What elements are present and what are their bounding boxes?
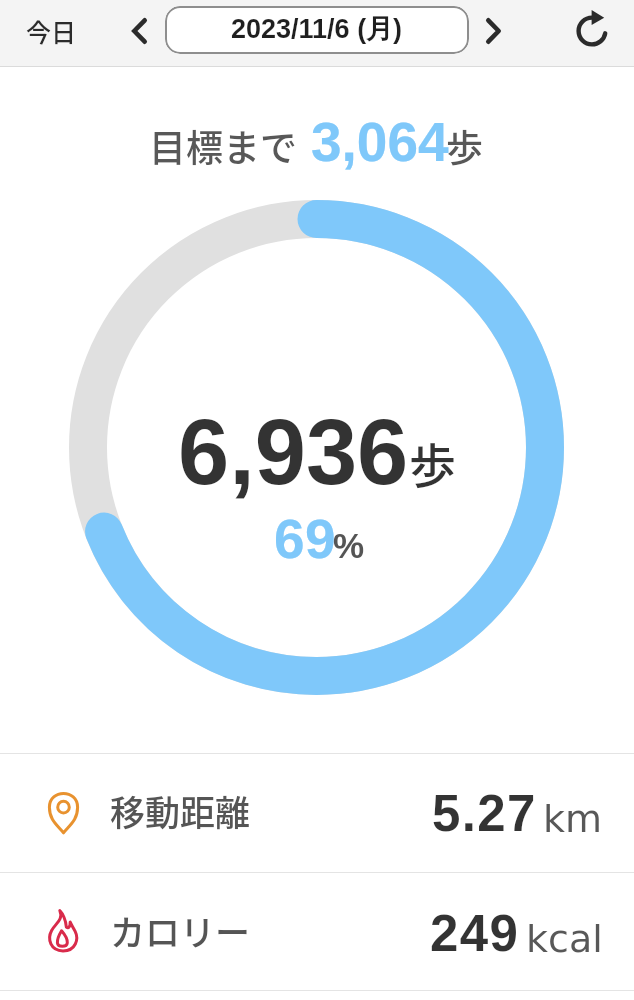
button[interactable]: 移動距離 <box>0 754 634 872</box>
staticText: 移動距離 <box>110 785 251 836</box>
staticText: 2023/11/6 (月) <box>231 12 403 46</box>
staticText: % <box>333 526 365 565</box>
staticText: 249 <box>430 905 520 962</box>
staticText: 5.27 <box>432 785 537 842</box>
button[interactable]: Previous day <box>117 0 162 62</box>
button[interactable]: Refresh <box>562 0 622 62</box>
staticText: 今日 <box>26 13 77 49</box>
staticText: km <box>543 797 603 841</box>
button[interactable]: 2023/11/6 (月) <box>165 6 469 54</box>
button[interactable]: カロリー <box>0 873 634 990</box>
button[interactable]: Next day <box>471 0 516 62</box>
staticText: 目標まで <box>149 119 297 173</box>
staticText: kcal <box>526 917 603 961</box>
staticText: 69 <box>274 508 336 569</box>
staticText: 歩 <box>409 428 456 496</box>
staticText: 歩 <box>446 119 483 173</box>
button[interactable]: 今日 <box>21 0 82 66</box>
staticText: カロリー <box>110 905 251 956</box>
staticText: 6,936 <box>178 401 409 504</box>
staticText: 3,064 <box>311 111 449 172</box>
